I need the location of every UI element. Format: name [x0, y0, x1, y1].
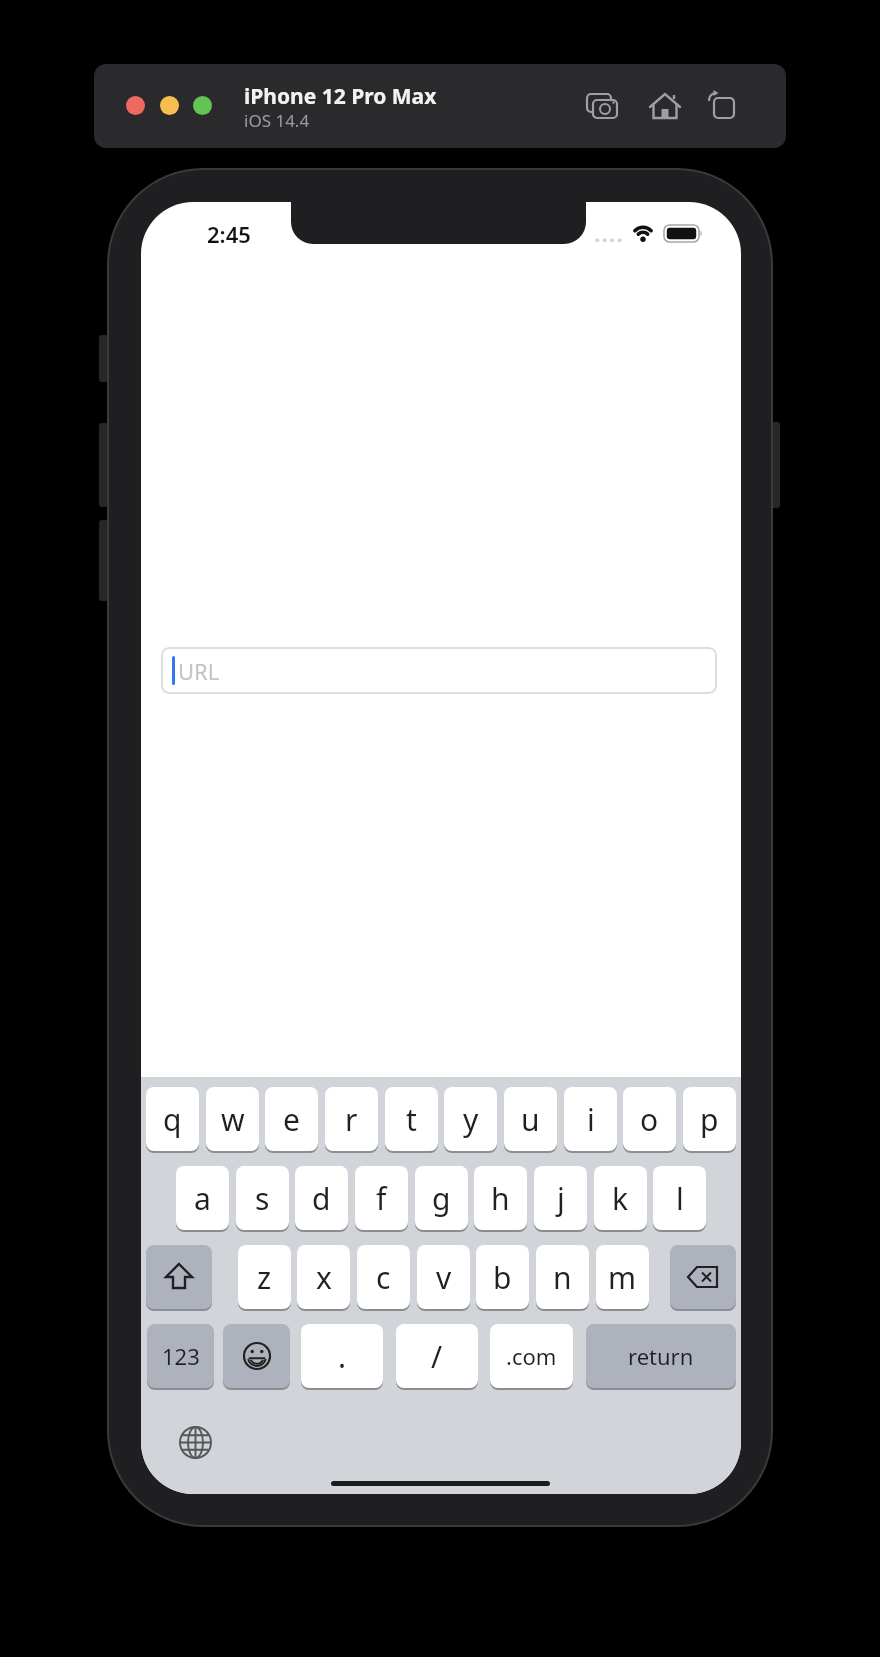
button[interactable] — [223, 1324, 290, 1388]
staticText: .com — [506, 1341, 557, 1371]
button[interactable]: u — [504, 1087, 557, 1151]
staticText: d — [312, 1178, 331, 1219]
button[interactable] — [146, 1245, 212, 1309]
button[interactable] — [193, 96, 212, 115]
button[interactable] — [160, 96, 179, 115]
button[interactable]: c — [357, 1245, 410, 1309]
button[interactable]: l — [653, 1166, 706, 1230]
staticText: n — [553, 1257, 572, 1298]
staticText: return — [628, 1341, 694, 1371]
button[interactable]: return — [586, 1324, 736, 1388]
staticText: w — [221, 1099, 245, 1140]
button[interactable]: v — [417, 1245, 470, 1309]
button[interactable] — [580, 85, 624, 129]
button[interactable]: h — [474, 1166, 527, 1230]
button[interactable] — [126, 96, 145, 115]
button[interactable]: 123 — [147, 1324, 214, 1388]
button[interactable]: t — [385, 1087, 438, 1151]
button[interactable]: n — [536, 1245, 589, 1309]
staticText: i — [587, 1099, 595, 1140]
staticText: b — [493, 1257, 512, 1298]
button[interactable] — [670, 1245, 736, 1309]
button[interactable]: z — [238, 1245, 291, 1309]
button[interactable]: / — [396, 1324, 478, 1388]
button[interactable] — [178, 1425, 213, 1460]
staticText: h — [491, 1178, 510, 1219]
staticText: a — [194, 1178, 211, 1219]
staticText: v — [436, 1257, 452, 1298]
staticText: o — [640, 1099, 659, 1140]
staticText: z — [257, 1257, 272, 1298]
staticText: 123 — [162, 1341, 200, 1371]
staticText: q — [163, 1099, 182, 1140]
staticText: iPhone 12 Pro Max — [244, 82, 437, 111]
button[interactable]: s — [236, 1166, 289, 1230]
button[interactable]: r — [325, 1087, 378, 1151]
button[interactable]: i — [564, 1087, 617, 1151]
staticText: iOS 14.4 — [244, 109, 310, 132]
button[interactable]: . — [301, 1324, 383, 1388]
staticText: 2:45 — [207, 219, 251, 247]
staticText: f — [376, 1178, 387, 1219]
staticText: k — [612, 1178, 629, 1219]
staticText: c — [376, 1257, 391, 1298]
staticText: URL — [178, 656, 220, 686]
button[interactable]: k — [594, 1166, 647, 1230]
staticText: r — [345, 1099, 358, 1140]
button[interactable]: d — [295, 1166, 348, 1230]
button[interactable]: g — [415, 1166, 468, 1230]
staticText: j — [557, 1178, 565, 1219]
button[interactable]: m — [596, 1245, 649, 1309]
staticText: x — [316, 1257, 332, 1298]
button[interactable]: y — [444, 1087, 497, 1151]
button[interactable]: b — [476, 1245, 529, 1309]
button[interactable] — [701, 85, 745, 129]
button[interactable]: a — [176, 1166, 229, 1230]
button[interactable]: x — [297, 1245, 350, 1309]
staticText: m — [608, 1257, 637, 1298]
button[interactable]: o — [623, 1087, 676, 1151]
button[interactable]: .com — [490, 1324, 573, 1388]
button[interactable] — [643, 85, 687, 129]
staticText: e — [283, 1099, 300, 1140]
staticText: / — [431, 1336, 443, 1377]
button[interactable]: e — [265, 1087, 318, 1151]
button[interactable]: f — [355, 1166, 408, 1230]
button[interactable]: w — [206, 1087, 259, 1151]
staticText: p — [700, 1099, 719, 1140]
staticText: y — [463, 1099, 479, 1140]
staticText: u — [521, 1099, 540, 1140]
staticText: g — [432, 1178, 451, 1219]
staticText: t — [406, 1099, 417, 1140]
staticText: s — [255, 1178, 270, 1219]
button[interactable]: URL — [161, 647, 717, 694]
button[interactable]: q — [146, 1087, 199, 1151]
button[interactable]: j — [534, 1166, 587, 1230]
staticText: l — [676, 1178, 684, 1219]
staticText: . — [338, 1336, 347, 1377]
button[interactable]: p — [683, 1087, 736, 1151]
